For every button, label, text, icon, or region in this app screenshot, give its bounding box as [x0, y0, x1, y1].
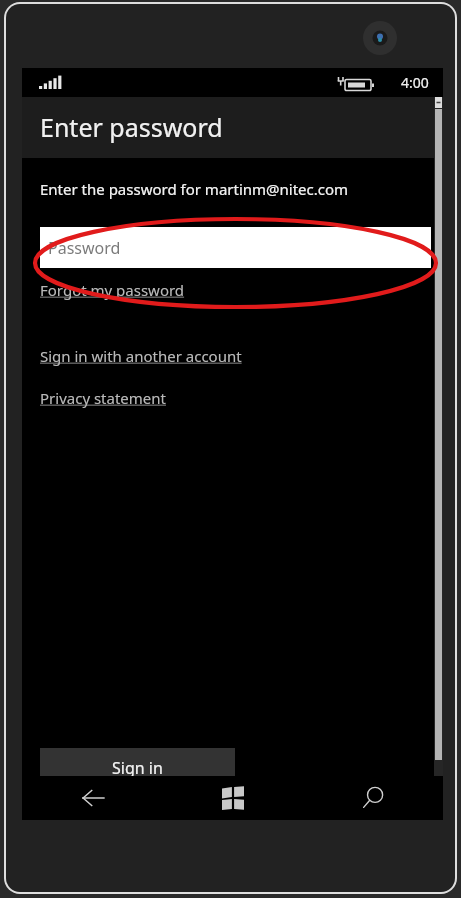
staticText: Forgot my password	[40, 280, 185, 300]
staticText: Privacy statement	[40, 388, 166, 408]
staticText: Sign in with another account	[40, 346, 242, 366]
button[interactable]: Search	[303, 776, 443, 820]
staticText: Password	[48, 237, 121, 259]
button[interactable]: Back	[22, 776, 163, 820]
staticText: Enter the password for martinm@nitec.com	[40, 179, 349, 199]
button[interactable]: Sign in	[40, 748, 235, 776]
button[interactable]: Sign in with another account	[40, 346, 242, 366]
staticText: 4:00	[401, 73, 429, 92]
button[interactable]: Start	[163, 776, 303, 820]
button[interactable]: Password	[40, 227, 431, 268]
staticText: Enter password	[40, 110, 223, 144]
button[interactable]: Privacy statement	[40, 388, 166, 408]
staticText: Sign in	[112, 757, 163, 779]
button[interactable]: Forgot my password	[40, 280, 185, 300]
